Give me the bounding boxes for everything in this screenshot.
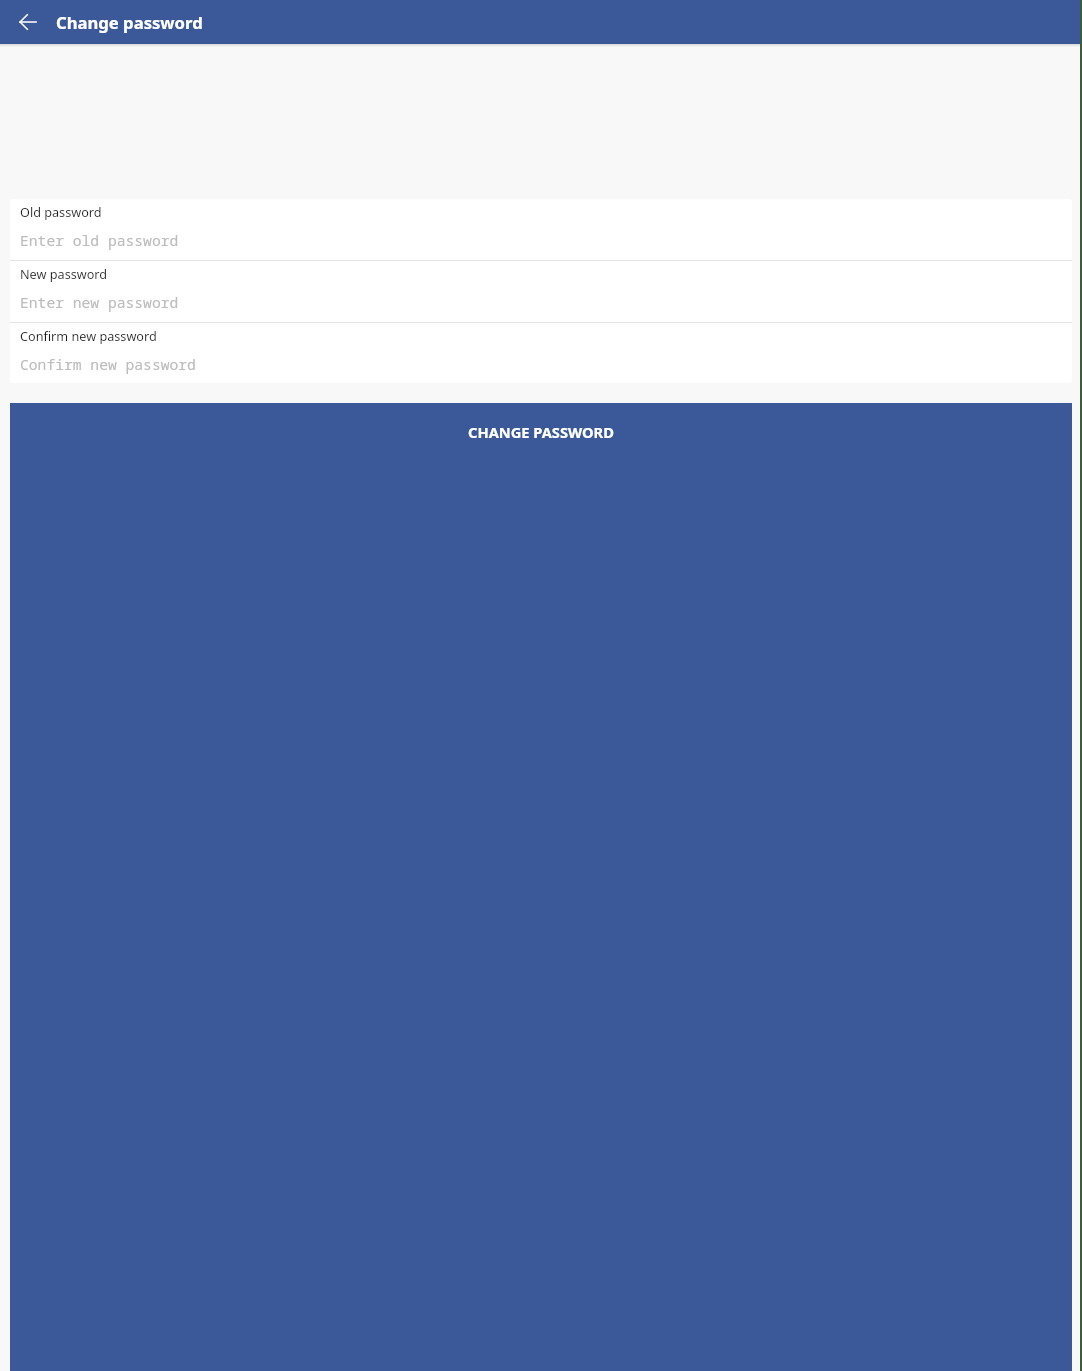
staticText: Change password: [56, 11, 203, 34]
staticText: Old password: [20, 203, 102, 220]
button[interactable]: Old password: [10, 199, 1072, 260]
staticText: Enter new password: [20, 292, 179, 312]
button[interactable]: Back: [15, 9, 41, 35]
staticText: Enter old password: [20, 230, 179, 250]
button[interactable]: Confirm new password: [10, 323, 1072, 383]
button[interactable]: CHANGE PASSWORD: [10, 403, 1072, 1371]
staticText: Confirm new password: [20, 327, 157, 344]
button[interactable]: New password: [10, 261, 1072, 322]
staticText: New password: [20, 265, 108, 282]
staticText: CHANGE PASSWORD: [468, 422, 614, 442]
staticText: Confirm new password: [20, 354, 196, 374]
